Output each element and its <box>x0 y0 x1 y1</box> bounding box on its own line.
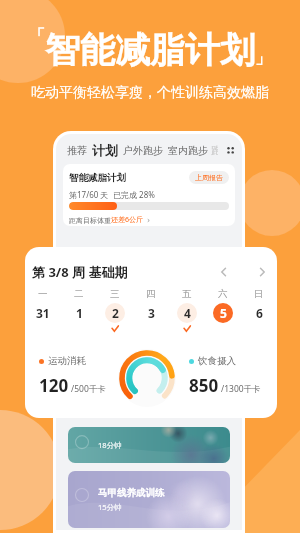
button[interactable]: Previous week <box>215 263 233 281</box>
staticText: 2 <box>112 305 119 321</box>
staticText: 吃动平衡轻松享瘦，个性训练高效燃脂 <box>0 84 300 102</box>
staticText: 六 <box>218 288 228 300</box>
staticText: 二 <box>74 288 84 300</box>
button[interactable]: 室内跑步 <box>168 144 208 157</box>
staticText: 」 <box>255 48 271 68</box>
staticText: /500千卡 <box>71 383 106 395</box>
staticText: 第 3/8 周 基础期 <box>32 263 128 281</box>
staticText: 31 <box>36 305 50 321</box>
staticText: 18分钟 <box>98 440 122 450</box>
staticText: 还差6公斤 <box>111 215 144 225</box>
staticText: 智能减脂计划 <box>69 172 126 184</box>
staticText: 智能减脂计划 <box>45 28 255 72</box>
staticText: 三 <box>110 288 120 300</box>
staticText: 马甲线养成训练 <box>98 487 165 499</box>
button[interactable]: 18分钟 <box>68 427 230 463</box>
button[interactable]: 5 <box>205 303 241 325</box>
staticText: 上周报告 <box>195 173 223 182</box>
staticText: 3 <box>148 305 155 321</box>
staticText: 四 <box>146 288 156 300</box>
button[interactable]: 户外跑步 <box>123 144 163 157</box>
staticText: /1300千卡 <box>221 383 261 395</box>
button[interactable]: 31 <box>25 303 61 325</box>
button[interactable]: 4 <box>169 303 205 333</box>
button[interactable]: Next week <box>253 263 271 281</box>
button[interactable]: 推荐 <box>67 144 87 157</box>
staticText: 1 <box>76 305 83 321</box>
staticText: 第17/60 天 <box>69 189 109 200</box>
button[interactable]: 3 <box>133 303 169 325</box>
button[interactable]: 智能减脂计划 <box>63 164 235 226</box>
button[interactable]: 1 <box>61 303 97 325</box>
staticText: 距离目标体重 <box>69 216 111 225</box>
staticText: 一 <box>38 288 48 300</box>
button[interactable]: 马甲线养成训练 <box>68 471 230 528</box>
button[interactable]: 6 <box>241 303 277 325</box>
staticText: 4 <box>184 305 191 321</box>
button[interactable]: 2 <box>97 303 133 333</box>
staticText: 6 <box>256 305 263 321</box>
staticText: 850 <box>189 374 219 397</box>
button[interactable]: More <box>225 144 238 157</box>
staticText: 日 <box>254 288 264 300</box>
button[interactable]: 计划 <box>92 142 118 158</box>
staticText: 15分钟 <box>98 502 122 512</box>
staticText: 饮食摄入 <box>198 355 236 367</box>
staticText: 跑 <box>211 144 218 157</box>
staticText: 运动消耗 <box>48 355 86 367</box>
staticText: 「 <box>29 26 45 46</box>
staticText: 五 <box>182 288 192 300</box>
staticText: 120 <box>39 374 69 397</box>
button[interactable]: 上周报告 <box>189 171 229 184</box>
staticText: 5 <box>220 305 227 321</box>
staticText: 已完成 28% <box>113 189 155 200</box>
